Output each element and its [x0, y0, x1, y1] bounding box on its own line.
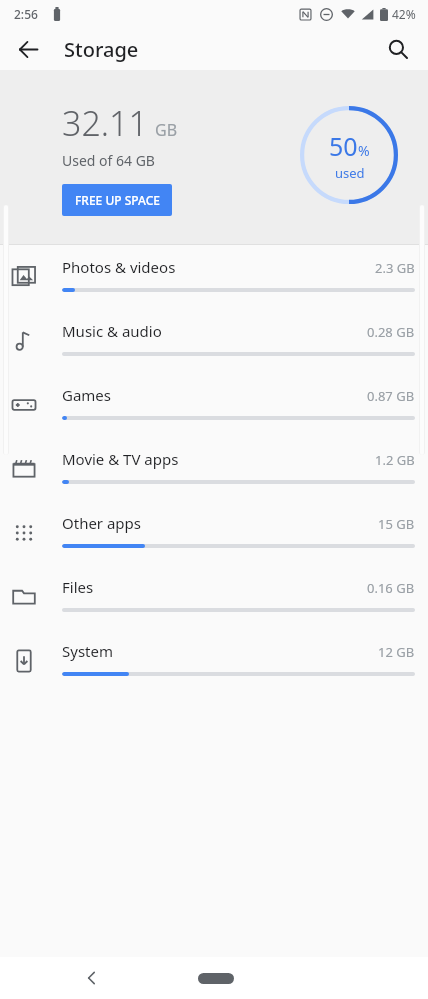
button[interactable]: Photos & videos	[0, 245, 428, 309]
staticText: Music & audio	[62, 321, 162, 341]
staticText: 0.28 GB	[367, 323, 415, 341]
button[interactable]: Home	[198, 973, 234, 984]
staticText: 0.16 GB	[367, 579, 415, 597]
staticText: Games	[62, 385, 112, 405]
staticText: 2:56	[14, 6, 38, 22]
staticText: 32.11	[62, 100, 148, 146]
staticText: 50	[329, 129, 358, 163]
staticText: Other apps	[62, 513, 142, 533]
button[interactable]: System	[0, 629, 428, 693]
staticText: Used of 64 GB	[62, 151, 155, 170]
button[interactable]: Files	[0, 565, 428, 629]
staticText: GB	[155, 119, 178, 141]
staticText: 0.87 GB	[367, 387, 415, 405]
button[interactable]: Games	[0, 373, 428, 437]
staticText: 42%	[392, 6, 416, 22]
staticText: Storage	[64, 36, 139, 63]
button[interactable]: Movie & TV apps	[0, 437, 428, 501]
staticText: Files	[62, 577, 94, 597]
button[interactable]: FREE UP SPACE	[62, 184, 172, 216]
staticText: 15 GB	[378, 515, 415, 533]
button[interactable]: Search	[378, 29, 418, 69]
staticText: used	[335, 164, 365, 182]
staticText: Movie & TV apps	[62, 449, 179, 469]
staticText: System	[62, 641, 113, 661]
staticText: 12 GB	[378, 643, 415, 661]
staticText: Photos & videos	[62, 257, 176, 277]
staticText: FREE UP SPACE	[75, 192, 160, 208]
button[interactable]: Back	[74, 960, 110, 996]
staticText: 2.3 GB	[375, 259, 415, 277]
button[interactable]: Other apps	[0, 501, 428, 565]
button[interactable]: Back	[8, 29, 48, 69]
button[interactable]: Music & audio	[0, 309, 428, 373]
staticText: %	[358, 141, 370, 160]
staticText: 1.2 GB	[375, 451, 415, 469]
